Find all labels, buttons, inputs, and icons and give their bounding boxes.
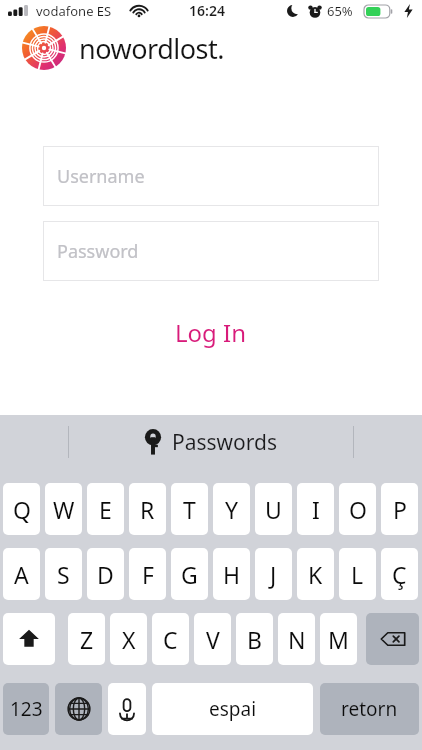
staticText: espai <box>209 696 257 722</box>
button[interactable]: P <box>381 483 418 535</box>
button[interactable]: Dictate <box>108 683 146 735</box>
button[interactable]: Y <box>213 483 250 535</box>
button[interactable]: Next keyboard <box>55 683 102 735</box>
button[interactable]: J <box>255 548 292 600</box>
button[interactable]: T <box>171 483 208 535</box>
staticText: 123 <box>10 696 43 722</box>
button[interactable]: C <box>152 613 189 665</box>
button[interactable]: H <box>213 548 250 600</box>
button[interactable]: S <box>45 548 82 600</box>
button[interactable]: retorn <box>320 683 419 735</box>
button[interactable]: E <box>87 483 124 535</box>
staticText: N <box>288 624 306 655</box>
button[interactable]: Delete <box>366 613 419 665</box>
staticText: Z <box>80 624 94 655</box>
staticText: G <box>181 559 198 590</box>
staticText: P <box>393 494 407 525</box>
staticText: vodafone ES <box>36 2 112 20</box>
button[interactable]: R <box>129 483 166 535</box>
button[interactable]: D <box>87 548 124 600</box>
staticText: X <box>122 624 136 655</box>
button[interactable]: Password <box>43 221 379 281</box>
staticText: Passwords <box>172 428 278 457</box>
staticText: W <box>53 494 75 525</box>
staticText: A <box>14 559 29 590</box>
staticText: Log In <box>175 316 247 349</box>
staticText: V <box>206 624 220 655</box>
staticText: H <box>223 559 241 590</box>
staticText: O <box>349 494 367 525</box>
staticText: Ç <box>392 559 407 590</box>
button[interactable]: I <box>297 483 334 535</box>
button[interactable]: 123 <box>3 683 49 735</box>
staticText: C <box>163 624 178 655</box>
button[interactable]: Shift <box>3 613 55 665</box>
button[interactable]: U <box>255 483 292 535</box>
staticText: retorn <box>341 696 398 722</box>
staticText: Q <box>13 494 31 525</box>
button[interactable]: Passwords <box>69 415 353 469</box>
button[interactable]: Log In <box>0 309 422 355</box>
staticText: Y <box>225 494 239 525</box>
button[interactable]: Username <box>43 146 379 206</box>
staticText: 16:24 <box>189 1 225 20</box>
button[interactable]: G <box>171 548 208 600</box>
button[interactable]: K <box>297 548 334 600</box>
button[interactable]: X <box>110 613 147 665</box>
button[interactable]: M <box>320 613 357 665</box>
staticText: U <box>265 494 282 525</box>
button[interactable]: W <box>45 483 82 535</box>
staticText: M <box>328 624 349 655</box>
staticText: Password <box>57 239 139 264</box>
staticText: T <box>183 494 196 525</box>
staticText: E <box>99 494 112 525</box>
button[interactable]: B <box>236 613 273 665</box>
button[interactable]: espai <box>152 683 313 735</box>
button[interactable]: Z <box>68 613 105 665</box>
staticText: J <box>270 559 277 590</box>
button[interactable]: L <box>339 548 376 600</box>
staticText: S <box>57 559 70 590</box>
staticText: Username <box>57 164 145 189</box>
button[interactable]: Q <box>3 483 40 535</box>
staticText: K <box>308 559 323 590</box>
staticText: D <box>97 559 114 590</box>
button[interactable]: O <box>339 483 376 535</box>
staticText: nowordlost. <box>79 30 224 67</box>
button[interactable]: F <box>129 548 166 600</box>
staticText: L <box>351 559 364 590</box>
button[interactable]: A <box>3 548 40 600</box>
staticText: R <box>140 494 155 525</box>
staticText: 65% <box>327 2 353 20</box>
staticText: F <box>142 559 154 590</box>
staticText: I <box>312 494 320 525</box>
staticText: B <box>247 624 262 655</box>
button[interactable]: N <box>278 613 315 665</box>
button[interactable]: Ç <box>381 548 418 600</box>
button[interactable]: V <box>194 613 231 665</box>
